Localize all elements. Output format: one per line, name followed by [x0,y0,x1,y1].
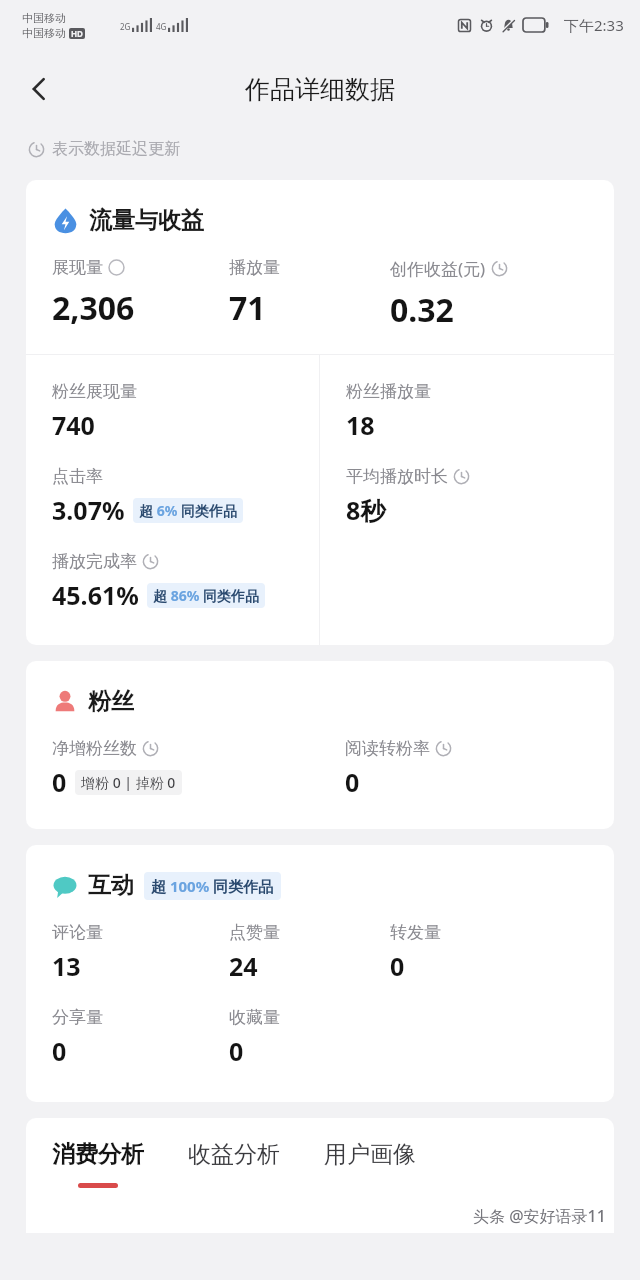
staticText: 收益分析 [188,1140,280,1169]
staticText: HD [71,28,83,39]
staticText: 粉丝 [88,687,134,716]
staticText: 3.07% [52,493,125,527]
staticText: 头条 @安好语录11 [473,1205,606,1227]
staticText: 展现量 [52,257,103,278]
staticText: 消费分析 [52,1140,144,1169]
staticText: 互动 [88,871,134,900]
staticText: 2,306 [52,286,135,330]
staticText: 粉丝播放量 [346,381,431,402]
staticText: 0 [229,1034,244,1068]
staticText: 增粉 0 | 掉粉 0 [81,773,176,792]
staticText: 用户画像 [324,1140,416,1169]
staticText: 转发量 [390,922,441,943]
staticText: 740 [52,408,95,442]
staticText: 中国移动 [22,11,66,25]
staticText: 流量与收益 [89,206,204,235]
staticText: 下午2:33 [564,15,624,35]
staticText: 0 [345,765,360,799]
staticText: 0 [390,949,405,983]
staticText: 播放完成率 [52,551,137,572]
staticText: 2G [120,21,131,32]
staticText: 作品详细数据 [245,74,395,105]
staticText: 评论量 [52,922,103,943]
button[interactable]: 互动 [26,845,614,1102]
staticText: 18 [346,408,375,442]
staticText: 超 6% 同类作品 [139,501,237,520]
staticText: 分享量 [52,1007,103,1028]
staticText: 超 100% 同类作品 [151,876,274,896]
staticText: 4G [156,21,167,32]
staticText: 点击率 [52,466,103,487]
staticText: 表示数据延迟更新 [52,139,180,159]
staticText: 0 [52,1034,67,1068]
staticText: 8秒 [346,493,386,527]
staticText: 净增粉丝数 [52,738,137,759]
staticText: 45.61% [52,578,139,612]
staticText: 71 [229,286,266,330]
staticText: 阅读转粉率 [345,738,430,759]
button[interactable]: 收益分析 [188,1140,280,1188]
staticText: 平均播放时长 [346,466,448,487]
staticText: 13 [52,949,81,983]
staticText: 中国移动 [22,26,66,40]
staticText: 粉丝展现量 [52,381,137,402]
staticText: 播放量 [229,257,280,278]
button[interactable]: 用户画像 [324,1140,416,1188]
staticText: 24 [229,949,258,983]
staticText: 0.32 [390,288,454,332]
button[interactable]: 粉丝 [26,661,614,829]
staticText: 收藏量 [229,1007,280,1028]
button[interactable]: Back [12,62,66,116]
staticText: 创作收益(元) [390,257,486,280]
staticText: 点赞量 [229,922,280,943]
staticText: 超 86% 同类作品 [153,586,259,605]
button[interactable]: 消费分析 [52,1140,144,1188]
button[interactable]: 流量与收益 [26,180,614,645]
staticText: 0 [52,765,67,799]
